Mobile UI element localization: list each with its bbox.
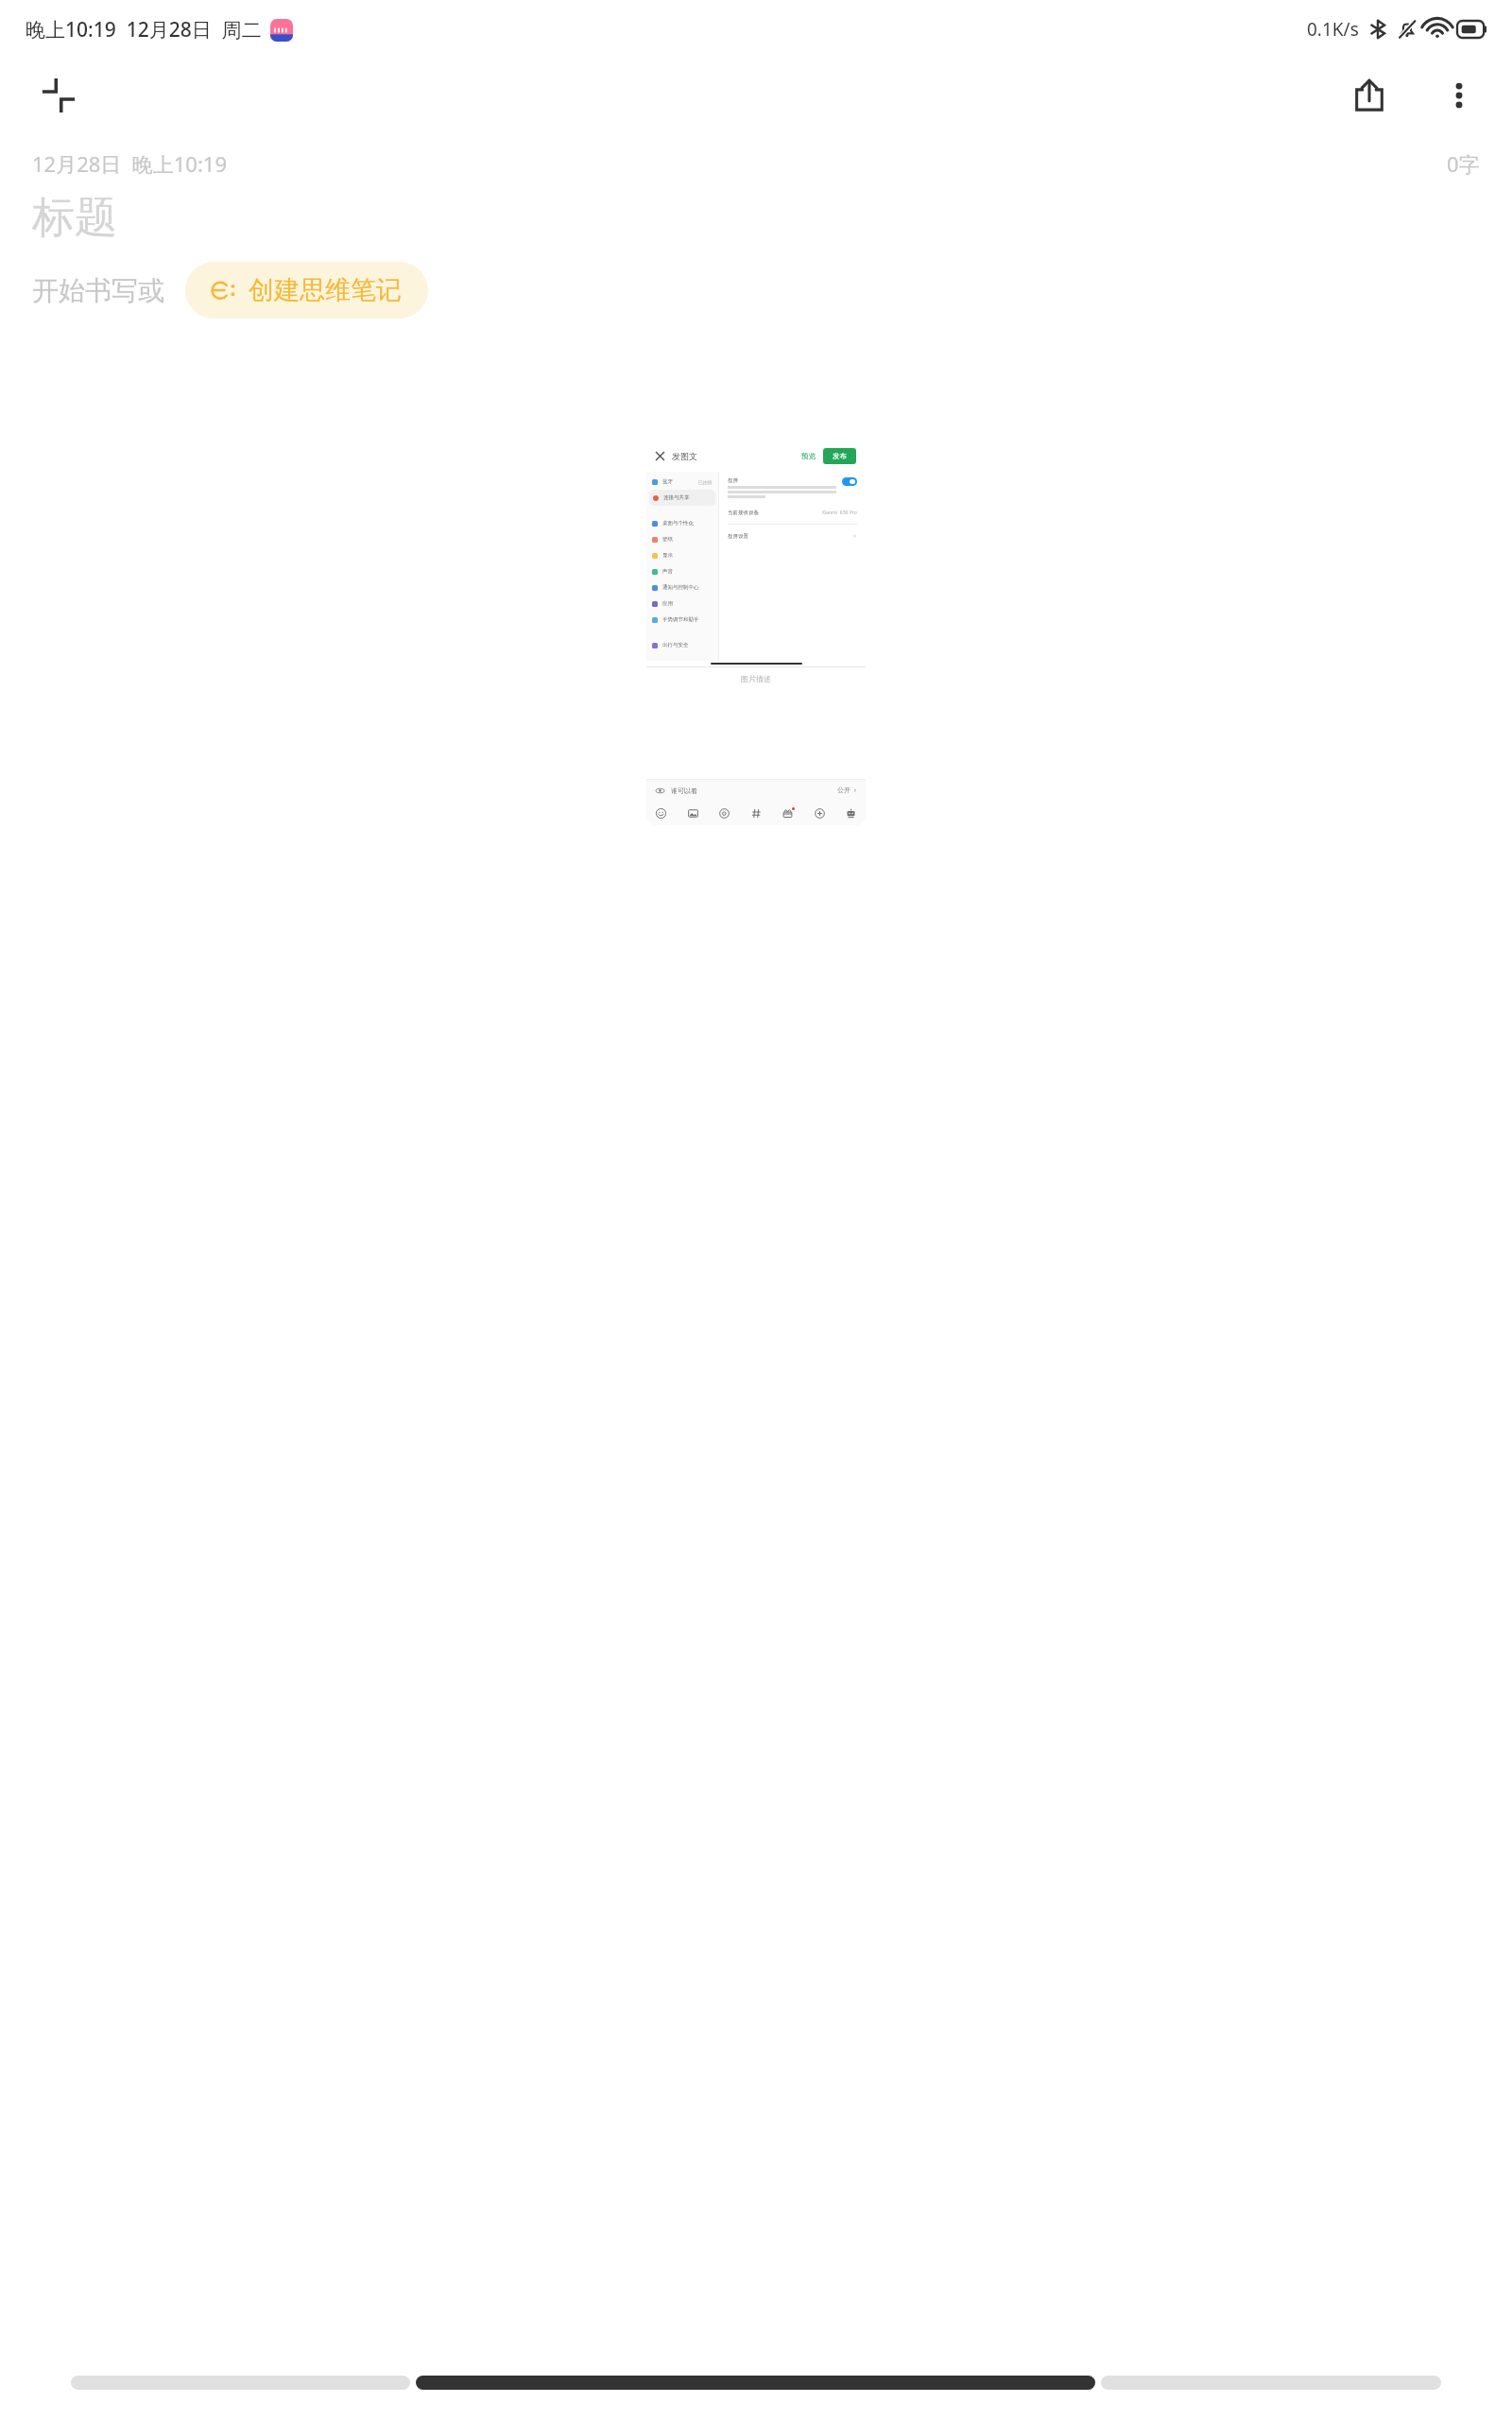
staticText: 声音 xyxy=(662,568,673,575)
staticText: Xiaomi K30 Pro xyxy=(822,510,857,516)
staticText: 投屏 xyxy=(728,477,738,484)
button[interactable]: Collapse xyxy=(32,69,85,122)
staticText: 投屏设置 xyxy=(728,533,748,540)
staticText: 0.1K/s xyxy=(1307,17,1359,42)
button[interactable]: 创建思维笔记 xyxy=(185,262,428,319)
staticText: 开始书写或 xyxy=(32,274,164,307)
staticText: 发图文 xyxy=(672,451,697,461)
staticText: 公开 › xyxy=(837,786,856,795)
button[interactable]: More options xyxy=(1433,69,1486,122)
staticText: 蓝牙 xyxy=(662,478,673,485)
button[interactable]: Share xyxy=(1340,66,1399,125)
staticText: 连接与共享 xyxy=(663,494,690,501)
staticText: 谁可以看 xyxy=(671,786,697,795)
staticText: 出行与安全 xyxy=(662,642,689,648)
staticText: 0字 xyxy=(1447,149,1480,178)
staticText: 壁纸 xyxy=(662,536,673,543)
staticText: 手势调节和助手 xyxy=(662,616,699,623)
staticText: 12月28日 晚上10:19 xyxy=(32,149,228,178)
button[interactable]: 标题 xyxy=(32,191,1480,245)
staticText: 图片描述 xyxy=(741,674,771,683)
staticText: 预览 xyxy=(801,452,816,460)
staticText: 通知与控制中心 xyxy=(662,584,699,591)
staticText: 晚上10:19 12月28日 周二 xyxy=(26,16,262,43)
staticText: 创建思维笔记 xyxy=(249,274,402,306)
staticText: 标题 xyxy=(32,191,117,245)
staticText: 显示 xyxy=(662,552,673,559)
staticText: 当前接收设备 xyxy=(728,510,759,516)
button[interactable]: Home xyxy=(416,2376,1095,2390)
staticText: 桌面与个性化 xyxy=(662,520,694,527)
staticText: 发布 xyxy=(833,452,847,460)
staticText: 已连接 xyxy=(698,479,713,485)
staticText: > xyxy=(853,532,857,540)
button[interactable]: 发图文 xyxy=(646,440,866,825)
staticText: 应用 xyxy=(662,600,673,607)
